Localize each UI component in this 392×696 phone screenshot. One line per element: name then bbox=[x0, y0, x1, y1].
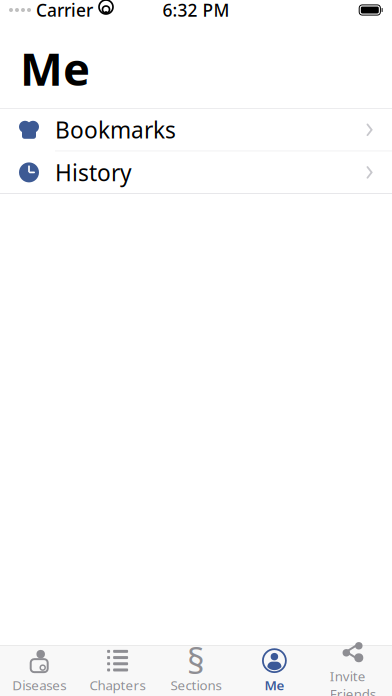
button[interactable]: Me bbox=[235, 646, 314, 696]
button[interactable]: History bbox=[0, 151, 392, 193]
staticText: History bbox=[55, 157, 132, 187]
staticText: 6:32 PM bbox=[162, 0, 229, 21]
button[interactable]: Bookmarks bbox=[0, 109, 392, 151]
staticText: Diseases bbox=[12, 676, 66, 694]
staticText: § bbox=[187, 638, 205, 684]
button[interactable]: Invite Friends bbox=[314, 646, 392, 696]
staticText: Bookmarks bbox=[55, 115, 176, 145]
button[interactable]: Diseases bbox=[0, 646, 78, 696]
staticText: Sections bbox=[170, 676, 221, 694]
staticText: Carrier bbox=[36, 0, 93, 21]
staticText: Me bbox=[20, 38, 90, 98]
staticText: Invite Friends bbox=[330, 667, 376, 696]
button[interactable]: Chapters bbox=[78, 646, 157, 696]
button[interactable]: § bbox=[157, 646, 235, 696]
staticText: Chapters bbox=[90, 676, 146, 694]
staticText: Me bbox=[264, 676, 284, 694]
